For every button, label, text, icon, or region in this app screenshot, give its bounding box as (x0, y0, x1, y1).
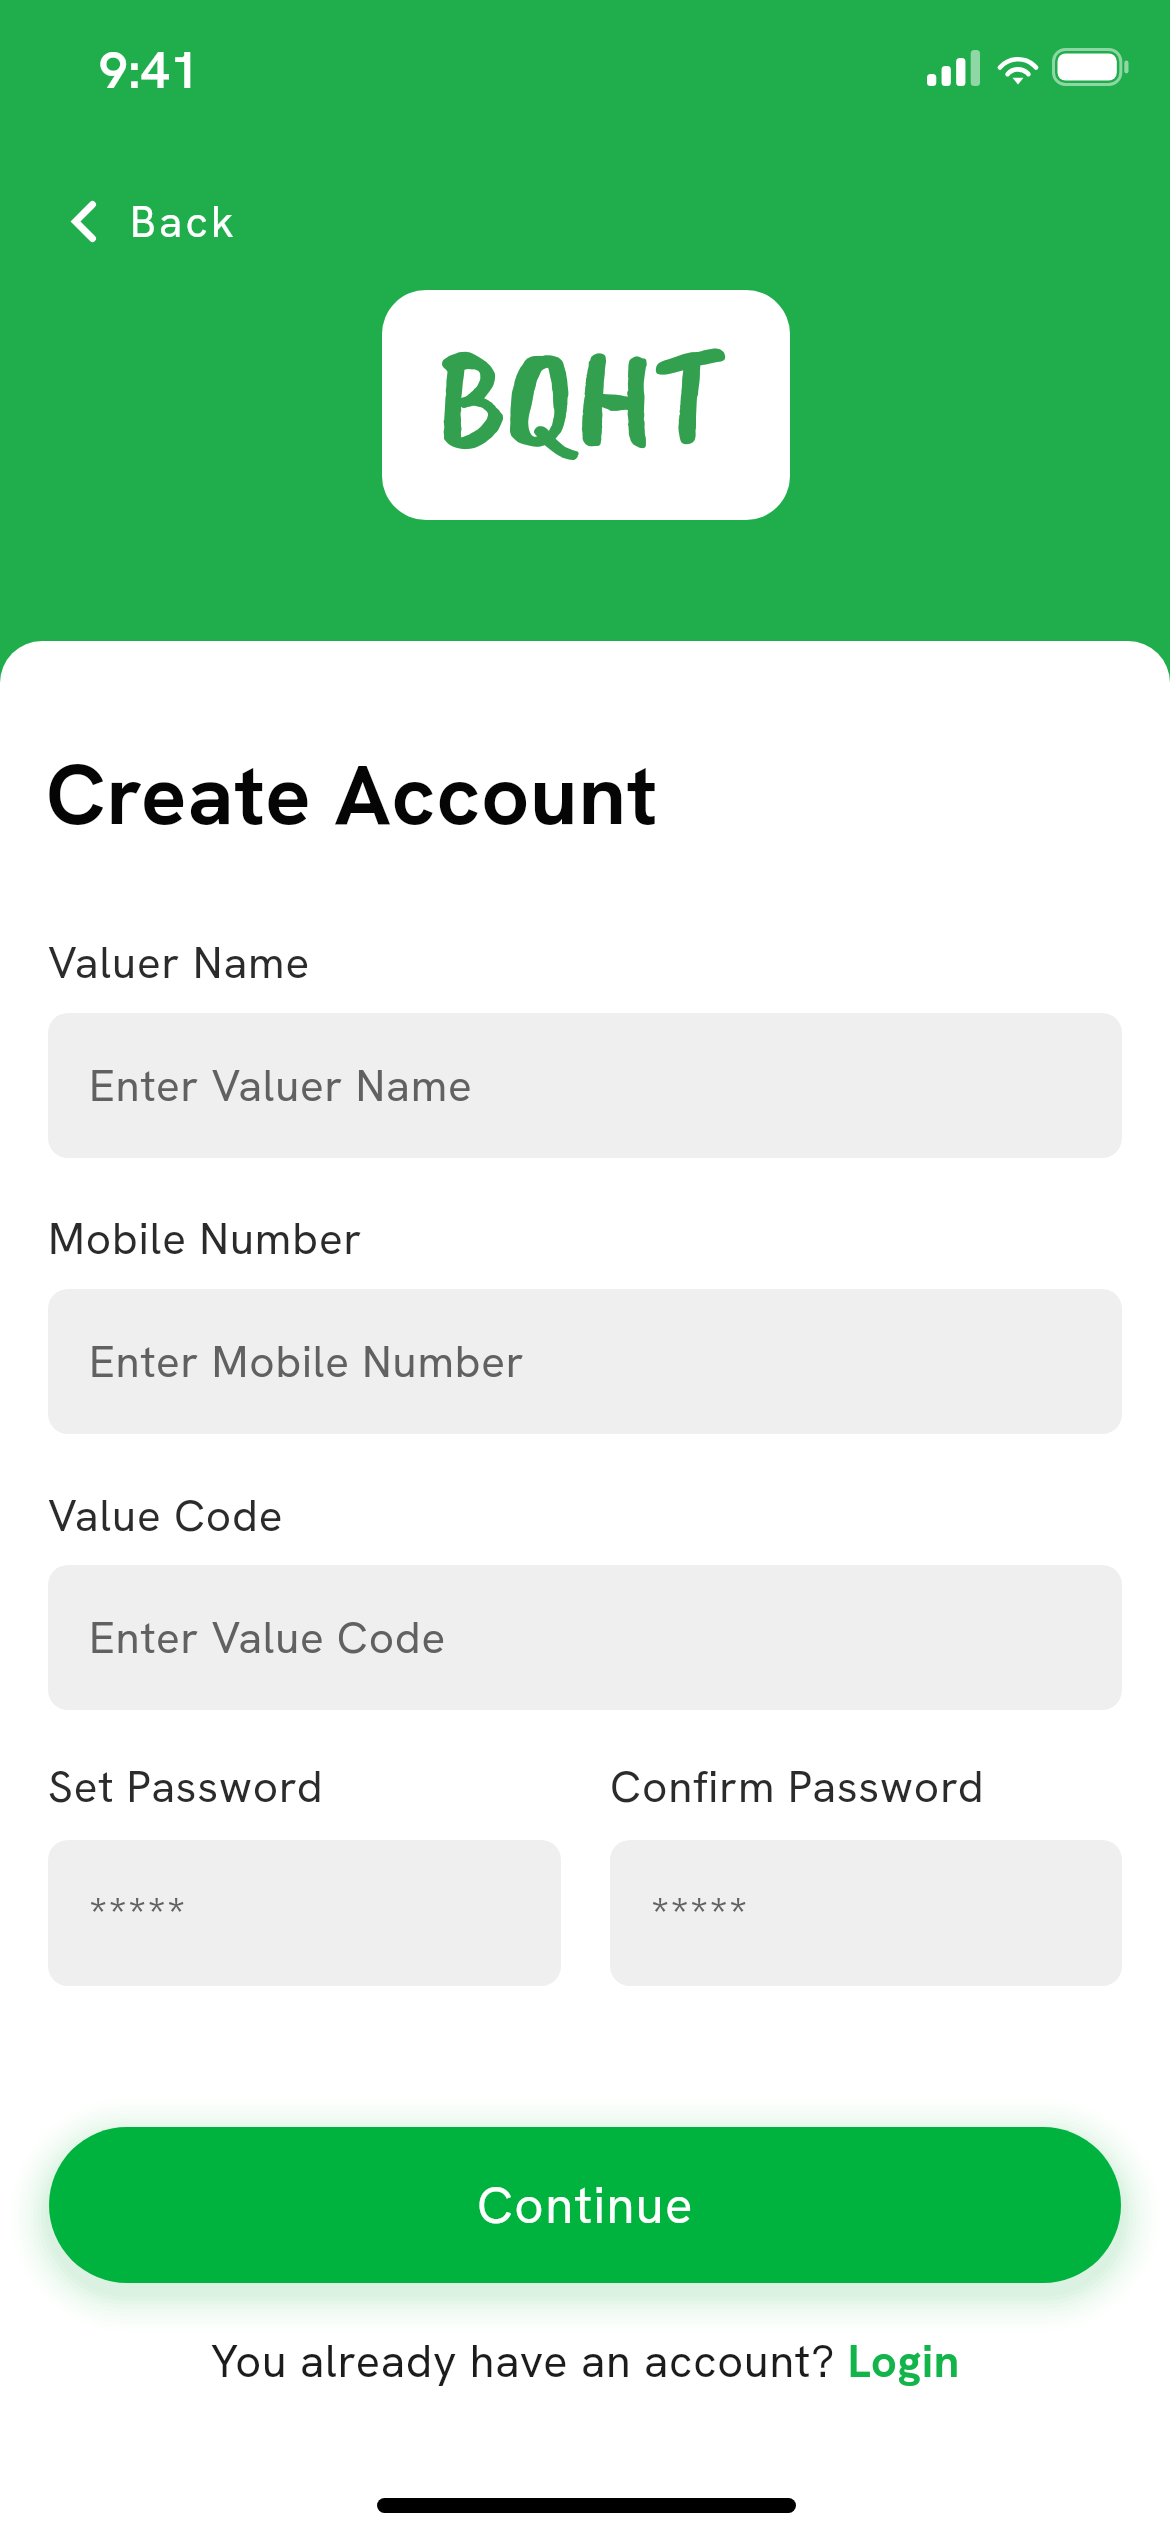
staticText: BQHT (436, 308, 722, 488)
staticText: You already have an account? Login (211, 2332, 960, 2391)
button[interactable]: Enter Mobile Number (48, 1289, 1122, 1434)
staticText: Valuer Name (48, 934, 311, 991)
staticText: 9:41 (99, 37, 200, 103)
button[interactable]: Continue (49, 2127, 1121, 2283)
staticText: Enter Value Code (89, 1609, 447, 1666)
staticText: Confirm Password (610, 1758, 985, 1815)
button[interactable]: Enter Valuer Name (48, 1013, 1122, 1158)
staticText: Enter Mobile Number (89, 1333, 525, 1390)
button[interactable]: ***** (610, 1840, 1122, 1986)
staticText: ***** (89, 1884, 187, 1944)
staticText: Continue (477, 2172, 694, 2238)
button[interactable]: ***** (48, 1840, 561, 1986)
staticText: Mobile Number (48, 1210, 363, 1267)
staticText: Value Code (48, 1487, 284, 1544)
staticText: ***** (651, 1884, 749, 1944)
staticText: Enter Valuer Name (89, 1057, 473, 1114)
staticText: Set Password (48, 1758, 324, 1815)
staticText: Back (130, 194, 238, 250)
button[interactable]: You already have an account? Login (0, 2325, 1170, 2397)
button[interactable]: Enter Value Code (48, 1565, 1122, 1710)
button[interactable]: Back (52, 178, 262, 266)
staticText: Create Account (46, 740, 659, 849)
